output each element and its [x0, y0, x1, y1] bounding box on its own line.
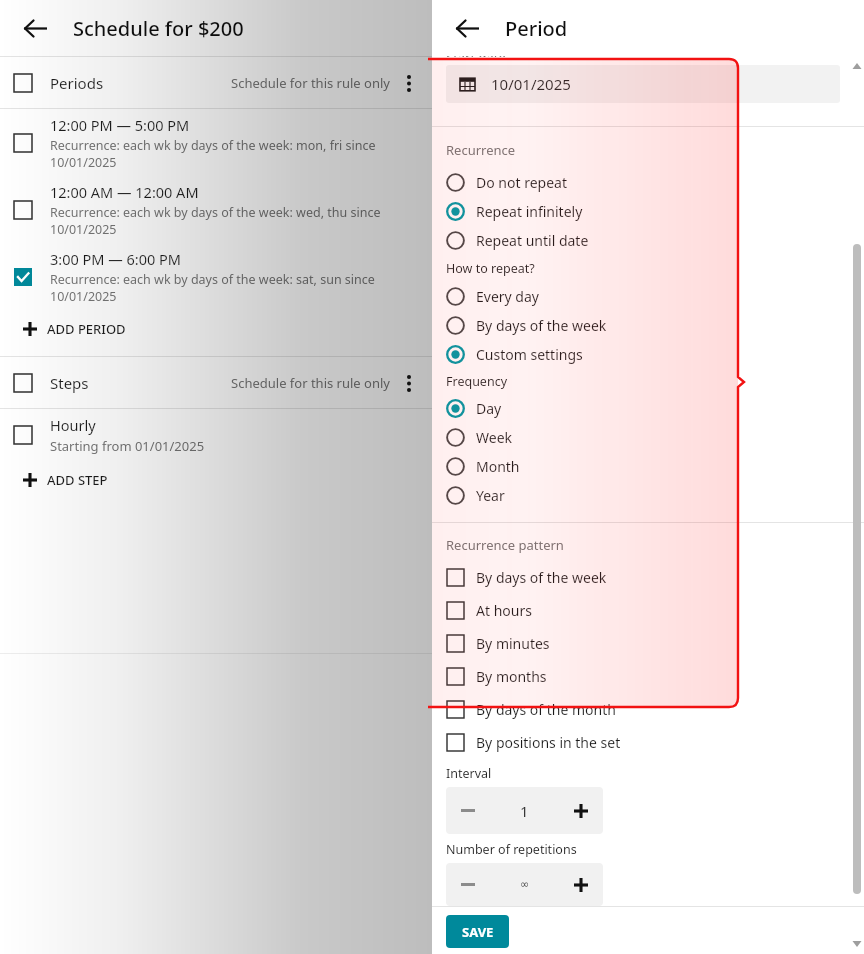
staticText: Steps — [50, 373, 89, 393]
button[interactable]: Steps — [0, 357, 432, 408]
button[interactable]: Day — [432, 394, 864, 423]
button[interactable]: Repeat until date — [432, 226, 864, 255]
button[interactable]: Periods — [0, 57, 432, 108]
staticText: Start date — [446, 56, 506, 57]
staticText: Recurrence: each wk by days of the week:… — [50, 271, 375, 305]
staticText: Recurrence pattern — [446, 536, 564, 554]
button[interactable]: ADD STEP — [0, 461, 432, 498]
button[interactable]: By days of the month — [432, 693, 864, 726]
button[interactable]: Decrease — [446, 863, 490, 906]
staticText: By days of the week — [476, 568, 607, 587]
button[interactable]: 10/01/2025 — [446, 65, 840, 103]
button[interactable]: 12:00 PM — 5:00 PM — [0, 109, 432, 176]
staticText: 3:00 PM — 6:00 PM — [50, 249, 181, 269]
staticText: At hours — [476, 601, 532, 620]
button[interactable]: By months — [432, 660, 864, 693]
staticText: Starting from 01/01/2025 — [50, 437, 205, 455]
staticText: Day — [476, 399, 502, 418]
staticText: Schedule for $200 — [73, 15, 244, 42]
staticText: ∞ — [520, 878, 530, 891]
button[interactable]: Month — [432, 452, 864, 481]
button[interactable]: By days of the week — [432, 561, 864, 594]
staticText: Recurrence — [446, 141, 516, 159]
button[interactable]: By minutes — [432, 627, 864, 660]
button[interactable]: Do not repeat — [432, 168, 864, 197]
staticText: 10/01/2025 — [491, 74, 571, 94]
staticText: Schedule for this rule only — [231, 74, 390, 92]
button[interactable]: At hours — [432, 594, 864, 627]
button[interactable]: More options — [394, 368, 424, 398]
staticText: Recurrence: each wk by days of the week:… — [50, 137, 376, 171]
staticText: Do not repeat — [476, 173, 567, 192]
button[interactable]: Back — [18, 11, 52, 45]
staticText: By positions in the set — [476, 733, 621, 752]
staticText: SAVE — [462, 923, 494, 941]
staticText: Period — [505, 15, 568, 42]
staticText: Repeat until date — [476, 231, 589, 250]
staticText: ADD PERIOD — [47, 320, 126, 338]
staticText: Every day — [476, 287, 539, 306]
button[interactable]: Year — [432, 481, 864, 510]
staticText: Schedule for this rule only — [231, 374, 390, 392]
button[interactable]: 12:00 AM — 12:00 AM — [0, 176, 432, 243]
button[interactable]: Week — [432, 423, 864, 452]
staticText: Repeat infinitely — [476, 202, 583, 221]
staticText: Frequency — [446, 373, 508, 390]
staticText: Interval — [446, 765, 492, 782]
staticText: How to repeat? — [446, 260, 535, 277]
staticText: By minutes — [476, 634, 550, 653]
button[interactable]: By days of the week — [432, 311, 864, 340]
staticText: Number of repetitions — [446, 841, 577, 858]
staticText: Week — [476, 428, 513, 447]
button[interactable]: By positions in the set — [432, 726, 864, 759]
button[interactable]: Repeat infinitely — [432, 197, 864, 226]
staticText: Periods — [50, 73, 104, 93]
button[interactable]: Custom settings — [432, 340, 864, 369]
staticText: Year — [476, 486, 505, 505]
button[interactable]: More options — [394, 68, 424, 98]
staticText: By days of the week — [476, 316, 607, 335]
staticText: 1 — [520, 801, 529, 821]
staticText: By months — [476, 667, 547, 686]
button[interactable]: Increase — [559, 787, 603, 834]
staticText: By days of the month — [476, 700, 616, 719]
button[interactable]: 3:00 PM — 6:00 PM — [0, 243, 432, 310]
button[interactable]: Decrease — [446, 787, 490, 834]
button[interactable]: SAVE — [446, 915, 509, 948]
button[interactable]: Back — [450, 11, 484, 45]
staticText: 12:00 PM — 5:00 PM — [50, 115, 190, 135]
button[interactable]: ADD PERIOD — [0, 310, 432, 347]
staticText: Hourly — [50, 415, 96, 435]
staticText: 12:00 AM — 12:00 AM — [50, 182, 199, 202]
staticText: Custom settings — [476, 345, 583, 364]
staticText: ADD STEP — [47, 471, 108, 489]
button[interactable]: Hourly — [0, 409, 432, 461]
button[interactable]: Every day — [432, 282, 864, 311]
staticText: Recurrence: each wk by days of the week:… — [50, 204, 381, 238]
staticText: Month — [476, 457, 520, 476]
button[interactable]: Increase — [559, 863, 603, 906]
